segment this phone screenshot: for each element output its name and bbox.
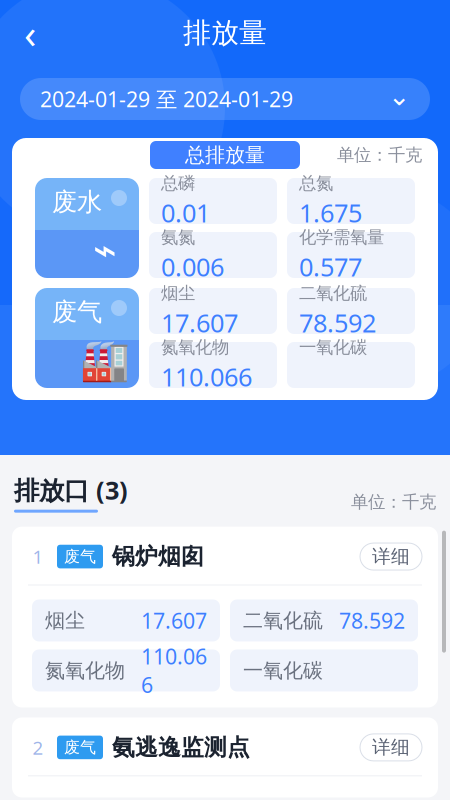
button[interactable]: 详细 bbox=[360, 734, 422, 761]
staticText: 17.607 bbox=[161, 306, 238, 339]
staticText: 排放量 bbox=[183, 16, 267, 50]
staticText: 78.592 bbox=[339, 606, 405, 635]
staticText: 1.675 bbox=[299, 196, 362, 229]
staticText: 一氧化碳 bbox=[299, 336, 367, 358]
button[interactable]: 1 bbox=[12, 527, 438, 707]
staticText: 总氮 bbox=[299, 172, 333, 194]
staticText: 烟尘 bbox=[161, 282, 195, 304]
staticText: 化学需氧量 bbox=[299, 226, 384, 248]
staticText: 2024-01-29 至 2024-01-29 bbox=[40, 85, 293, 113]
staticText: 废气 bbox=[64, 547, 96, 566]
staticText: 氨氮 bbox=[161, 226, 195, 248]
staticText: ⌄ bbox=[388, 81, 410, 111]
staticText: 二氧化硫 bbox=[243, 608, 323, 633]
staticText: 一氧化碳 bbox=[243, 658, 323, 683]
staticText: 排放口 (3) bbox=[14, 473, 128, 507]
staticText: 1 bbox=[32, 544, 43, 569]
staticText: ‹ bbox=[24, 6, 36, 59]
staticText: 详细 bbox=[372, 736, 410, 759]
staticText: 总排放量 bbox=[185, 143, 265, 167]
staticText: 废气 bbox=[52, 296, 102, 327]
staticText: 氮氧化物 bbox=[161, 336, 229, 358]
staticText: 2 bbox=[32, 735, 43, 760]
staticText: 110.066 bbox=[141, 642, 207, 699]
staticText: 0.006 bbox=[161, 250, 224, 283]
button[interactable]: 2 bbox=[12, 717, 438, 797]
staticText: 单位：千克 bbox=[337, 144, 422, 166]
button[interactable]: 详细 bbox=[360, 543, 422, 570]
staticText: 废水 bbox=[52, 186, 102, 217]
staticText: 0.577 bbox=[299, 250, 362, 283]
staticText: 氨逃逸监测点 bbox=[112, 733, 250, 761]
staticText: ⌁ bbox=[93, 227, 117, 273]
staticText: 🏭 bbox=[80, 337, 130, 383]
staticText: 总磷 bbox=[161, 172, 195, 194]
staticText: 110.066 bbox=[161, 360, 252, 393]
button[interactable]: 2024-01-29 至 2024-01-29 bbox=[20, 78, 430, 120]
staticText: 单位：千克 bbox=[351, 491, 436, 513]
staticText: 详细 bbox=[372, 545, 410, 568]
staticText: 二氧化硫 bbox=[299, 282, 367, 304]
staticText: 17.607 bbox=[141, 606, 207, 635]
staticText: 锅炉烟囱 bbox=[112, 543, 204, 570]
staticText: 78.592 bbox=[299, 306, 376, 339]
staticText: 0.01 bbox=[161, 196, 210, 229]
staticText: 废气 bbox=[64, 738, 96, 757]
staticText: 烟尘 bbox=[45, 608, 85, 633]
staticText: 氮氧化物 bbox=[45, 658, 125, 683]
button[interactable]: Back bbox=[8, 11, 52, 55]
